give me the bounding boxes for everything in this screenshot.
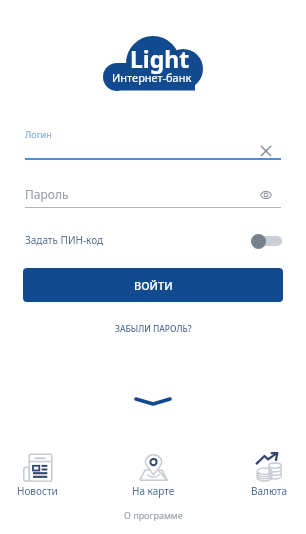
staticText: О программе [124,509,183,521]
staticText: Логин [25,128,52,140]
button[interactable]: ВОЙТИ [23,268,283,302]
button[interactable]: На карте [118,452,188,498]
staticText: Интернет-банк [112,70,192,85]
button[interactable]: Показать пароль [254,183,278,207]
staticText: Задать ПИН-код [25,233,104,247]
staticText: ЗАБЫЛИ ПАРОЛЬ? [115,323,192,335]
staticText: Пароль [25,186,69,202]
button[interactable]: Развернуть [129,386,177,416]
staticText: Валюта [251,484,288,498]
button[interactable]: Новости [2,452,72,498]
staticText: На карте [132,484,175,498]
button[interactable]: Очистить [254,139,278,163]
staticText: Новости [17,484,58,498]
button[interactable]: Задать ПИН-код [248,230,282,252]
button[interactable]: ЗАБЫЛИ ПАРОЛЬ? [100,318,206,340]
staticText: ВОЙТИ [134,278,173,293]
button[interactable]: Валюта [234,452,304,498]
staticText: Light [130,43,190,74]
button[interactable]: О программе [118,506,188,524]
